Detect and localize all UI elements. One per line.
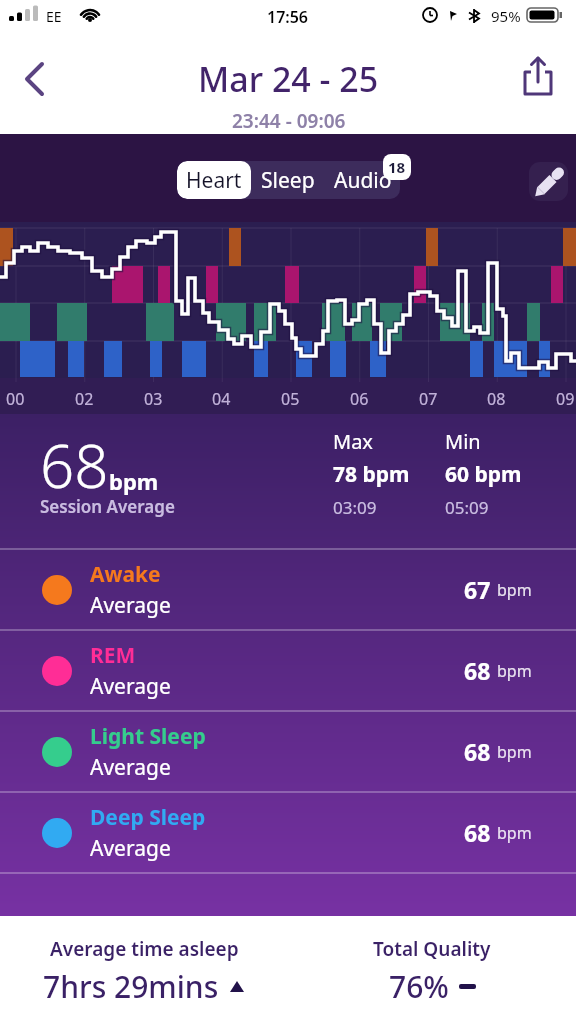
staticText: 08 — [487, 388, 506, 410]
button[interactable]: Average time asleep — [0, 916, 288, 1024]
button[interactable]: REM — [0, 631, 576, 710]
staticText: REM — [90, 641, 136, 670]
staticText: 03 — [144, 388, 163, 410]
staticText: bpm — [497, 660, 532, 682]
staticText: Average — [90, 591, 171, 620]
button[interactable]: Heart — [177, 161, 251, 199]
staticText: Average — [90, 834, 171, 863]
staticText: 78 bpm — [333, 460, 410, 489]
staticText: Session Average — [40, 495, 175, 518]
staticText: Total Quality — [373, 936, 491, 962]
button[interactable]: Deep Sleep — [0, 793, 576, 872]
staticText: 18 — [388, 157, 406, 177]
staticText: 03:09 — [333, 496, 377, 519]
staticText: 76% — [389, 966, 449, 1007]
staticText: 09 — [556, 388, 575, 410]
button[interactable]: Sleep — [251, 161, 325, 199]
staticText: EE — [46, 7, 62, 26]
button[interactable]: Light Sleep — [0, 712, 576, 791]
staticText: Heart — [186, 166, 242, 195]
staticText: Deep Sleep — [90, 803, 206, 832]
staticText: bpm — [497, 579, 532, 601]
button[interactable]: Audio — [325, 161, 400, 199]
staticText: 02 — [75, 388, 94, 410]
staticText: Audio — [334, 166, 392, 195]
staticText: 17:56 — [267, 6, 309, 28]
staticText: Average — [90, 753, 171, 782]
button[interactable] — [516, 54, 560, 98]
staticText: 68 — [464, 817, 491, 848]
staticText: bpm — [497, 822, 532, 844]
staticText: Mar 24 - 25 — [198, 56, 379, 102]
staticText: 05:09 — [445, 496, 489, 519]
staticText: Max — [333, 428, 373, 455]
staticText: 95% — [491, 6, 521, 26]
staticText: 23:44 - 09:06 — [232, 108, 346, 134]
staticText: 68 — [40, 424, 109, 506]
staticText: Min — [445, 428, 481, 455]
staticText: Average time asleep — [50, 936, 239, 962]
staticText: Sleep — [261, 166, 315, 195]
staticText: bpm — [109, 466, 159, 496]
staticText: 60 bpm — [445, 460, 522, 489]
staticText: 07 — [419, 388, 438, 410]
staticText: 67 — [464, 574, 491, 605]
staticText: 68 — [464, 655, 491, 686]
button[interactable]: Total Quality — [288, 916, 576, 1024]
staticText: 00 — [6, 388, 25, 410]
staticText: 7hrs 29mins — [43, 966, 219, 1007]
staticText: 04 — [212, 388, 231, 410]
button[interactable] — [12, 57, 56, 101]
button[interactable] — [529, 162, 568, 201]
staticText: 05 — [281, 388, 300, 410]
staticText: Light Sleep — [90, 722, 206, 751]
staticText: bpm — [497, 741, 532, 763]
staticText: Awake — [90, 560, 161, 589]
staticText: 68 — [464, 736, 491, 767]
staticText: 06 — [350, 388, 369, 410]
button[interactable]: Awake — [0, 550, 576, 629]
staticText: Average — [90, 672, 171, 701]
